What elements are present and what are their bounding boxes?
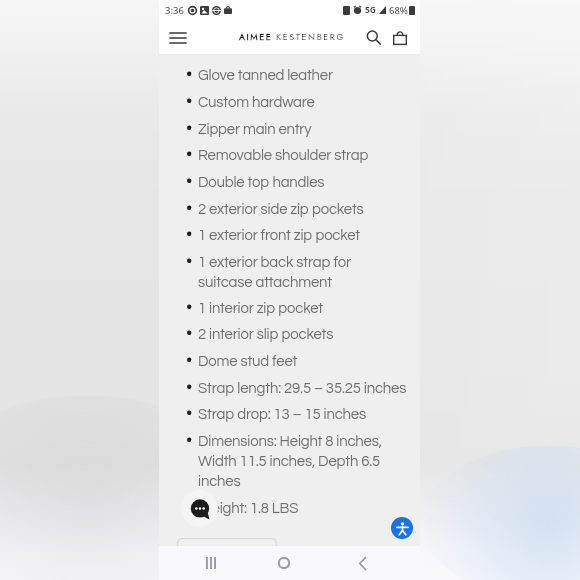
staticText: Removable shoulder strap <box>198 148 369 163</box>
button[interactable]: Shopping bag <box>387 24 413 50</box>
staticText: Weight: 1.8 LBS <box>198 501 299 516</box>
staticText: Double top handles <box>198 175 325 190</box>
staticText: Strap drop: 13 – 15 inches <box>198 407 366 422</box>
staticText: Strap length: 29.5 – 35.25 inches <box>198 381 407 396</box>
button[interactable]: Menu <box>164 24 191 51</box>
button[interactable]: Chat <box>181 490 218 527</box>
staticText: 1 interior zip pocket <box>198 301 323 316</box>
staticText: 5G <box>365 4 377 16</box>
staticText: AIMEE <box>239 30 273 43</box>
staticText: KESTENBERG <box>276 30 346 43</box>
staticText: Glove tanned leather <box>198 68 333 83</box>
button[interactable]: Back <box>349 550 375 576</box>
staticText: 68% <box>389 4 408 17</box>
button[interactable]: Accessibility <box>391 517 413 539</box>
button[interactable]: Home <box>271 550 297 576</box>
staticText: Custom hardware <box>198 95 315 110</box>
staticText: 3:36 <box>165 4 184 17</box>
staticText: 1 exterior back strap for suitcase attac… <box>198 255 351 290</box>
staticText: Dimensions: Height 8 inches, Width 11.5 … <box>198 434 382 489</box>
button[interactable] <box>177 538 277 558</box>
staticText: 1 exterior front zip pocket <box>198 228 361 243</box>
button[interactable]: Recents <box>198 550 224 576</box>
button[interactable]: Search <box>360 24 386 50</box>
staticText: 2 exterior side zip pockets <box>198 202 364 217</box>
staticText: Zipper main entry <box>198 122 312 137</box>
staticText: Dome stud feet <box>198 354 298 369</box>
staticText: 2 interior slip pockets <box>198 327 334 342</box>
